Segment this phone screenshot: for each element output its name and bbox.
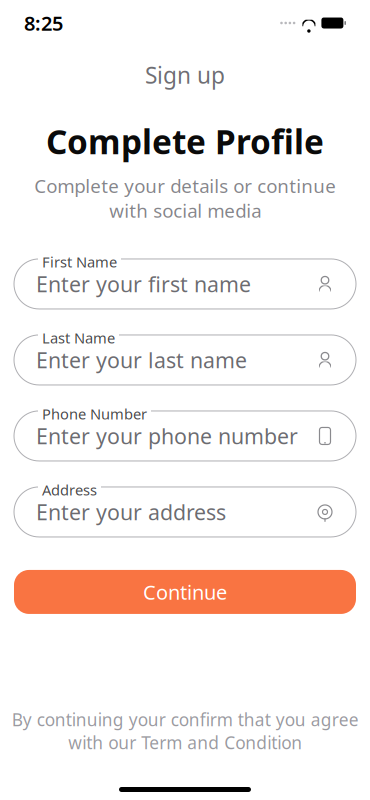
staticText: Phone Number <box>42 404 147 423</box>
staticText: Enter your last name <box>36 346 247 374</box>
staticText: Enter your first name <box>36 270 251 298</box>
staticText: By continuing your confirm that you agre… <box>11 708 358 754</box>
staticText: 8:25 <box>24 10 63 36</box>
button[interactable]: Enter your last name <box>14 326 356 385</box>
staticText: Address <box>42 480 97 499</box>
button[interactable]: Continue <box>14 570 356 614</box>
button[interactable]: Enter your address <box>14 478 356 537</box>
staticText: Last Name <box>42 328 115 347</box>
staticText: Enter your phone number <box>36 422 298 450</box>
button[interactable]: Enter your phone number <box>14 402 356 461</box>
staticText: Complete Profile <box>46 119 324 163</box>
staticText: Continue <box>143 579 227 605</box>
button[interactable]: Enter your first name <box>14 250 356 309</box>
staticText: Enter your address <box>36 498 226 526</box>
staticText: First Name <box>42 252 117 271</box>
staticText: Complete your details or continue with s… <box>34 173 336 223</box>
staticText: Sign up <box>145 60 225 90</box>
